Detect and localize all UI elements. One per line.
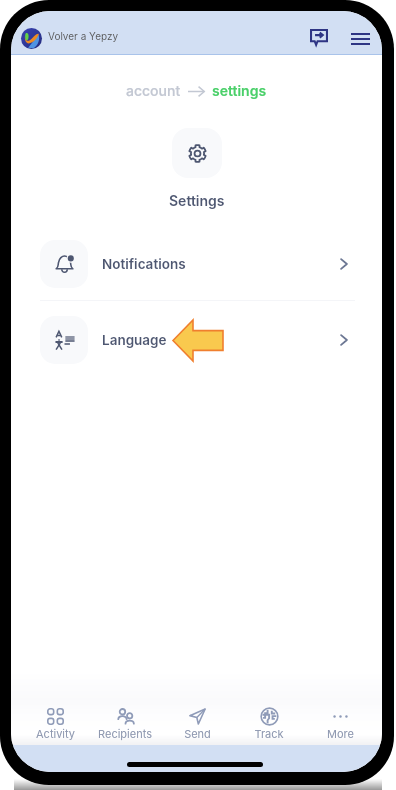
other: Open Notifications (340, 258, 348, 270)
button[interactable]: account (126, 82, 181, 99)
staticText: More (327, 727, 354, 740)
button[interactable]: Language (11, 302, 382, 378)
staticText: Language (102, 332, 167, 348)
button[interactable]: More (305, 694, 375, 740)
staticText: Recipients (98, 727, 152, 740)
button[interactable]: Feedback (304, 22, 334, 52)
button[interactable]: Send (162, 694, 232, 740)
staticText: settings (212, 82, 267, 99)
staticText: Track (254, 727, 284, 740)
button[interactable]: Menu (345, 24, 375, 54)
button[interactable]: Recipients (90, 694, 160, 740)
button[interactable]: Track (234, 694, 304, 740)
staticText: Send (184, 727, 211, 740)
other: Open Language (340, 334, 348, 346)
staticText: Notifications (102, 256, 186, 272)
staticText: Settings (169, 192, 225, 209)
button[interactable]: Notifications (11, 226, 382, 302)
button[interactable]: Settings (172, 128, 222, 178)
button[interactable]: Activity (20, 694, 90, 740)
button[interactable]: Volver a Yepzy (21, 28, 119, 49)
staticText: Volver a Yepzy (48, 30, 119, 42)
staticText: Activity (36, 727, 75, 740)
